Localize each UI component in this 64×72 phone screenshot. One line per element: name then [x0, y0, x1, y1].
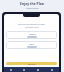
button[interactable]: Profile	[45, 67, 59, 72]
button[interactable]: Yearly	[6, 41, 57, 49]
staticText: Yearly	[29, 43, 35, 45]
staticText: Continue	[28, 63, 36, 65]
staticText: Monthly	[29, 33, 36, 35]
button[interactable]: Search	[17, 67, 31, 72]
button[interactable]: Plans	[31, 67, 45, 72]
staticText: Enjoy the Plan	[20, 1, 44, 6]
staticText: and start today	[25, 26, 39, 29]
button[interactable]: Home	[4, 67, 17, 72]
button[interactable]: Monthly	[6, 31, 57, 39]
staticText: Pick the plan that fits you best	[18, 23, 45, 26]
staticText: Subscription	[26, 7, 39, 10]
button[interactable]: Continue	[6, 62, 57, 65]
